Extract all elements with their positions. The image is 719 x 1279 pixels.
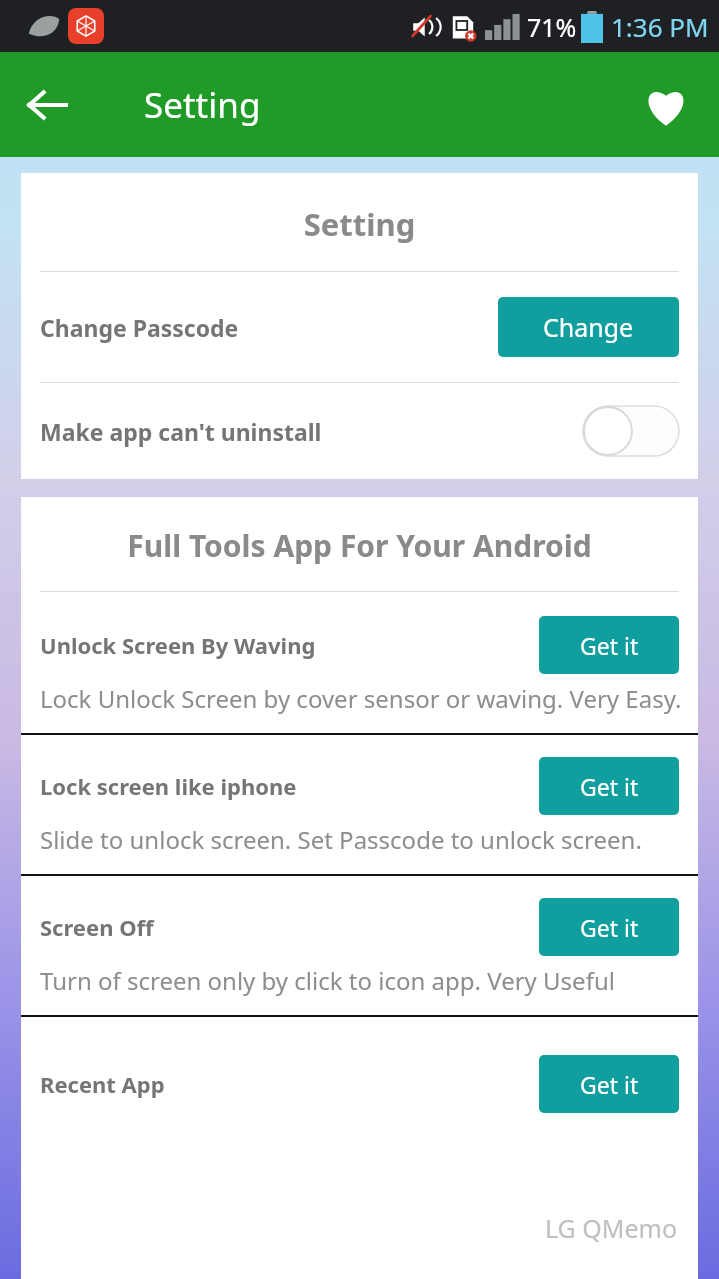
staticText: Recent App	[40, 1069, 539, 1099]
button[interactable]: Change	[498, 297, 679, 357]
staticText: Setting	[144, 81, 261, 129]
button[interactable]: Get it	[539, 757, 679, 815]
button[interactable]: Get it	[539, 898, 679, 956]
staticText: Make app can't uninstall	[40, 416, 583, 447]
staticText: Lock Unlock Screen by cover sensor or wa…	[40, 682, 684, 715]
staticText: Full Tools App For Your Android	[21, 525, 698, 566]
staticText: Screen Off	[40, 912, 539, 942]
staticText: Get it	[580, 1069, 639, 1100]
button[interactable]: Get it	[539, 616, 679, 674]
button[interactable]: Toggle uninstall protection	[583, 406, 679, 456]
staticText: Unlock Screen By Waving	[40, 630, 539, 660]
button[interactable]: Favorite	[637, 76, 695, 134]
staticText: 1:36 PM	[611, 9, 709, 44]
staticText: Get it	[580, 630, 639, 661]
staticText: LG QMemo	[545, 1211, 678, 1245]
staticText: Get it	[580, 771, 639, 802]
staticText: Setting	[21, 203, 698, 245]
staticText: Slide to unlock screen. Set Passcode to …	[40, 823, 684, 856]
staticText: Lock screen like iphone	[40, 771, 539, 801]
button[interactable]: Back	[18, 76, 76, 134]
button[interactable]: Get it	[539, 1055, 679, 1113]
staticText: Turn of screen only by click to icon app…	[40, 964, 684, 997]
staticText: Change	[543, 310, 634, 344]
staticText: 71%	[527, 10, 577, 44]
staticText: Change Passcode	[40, 312, 498, 343]
staticText: Get it	[580, 912, 639, 943]
